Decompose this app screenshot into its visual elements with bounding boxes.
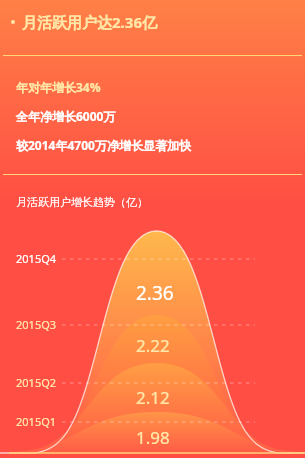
staticText: 2.12 [136,386,170,409]
staticText: 1.98 [136,426,170,449]
staticText: 2.36 [136,280,174,306]
staticText: 年对年增长34% [16,79,101,95]
staticText: 月活跃用户达2.36亿 [22,12,157,32]
staticText: 2015Q1 [16,414,57,429]
staticText: 2015Q3 [16,317,57,332]
staticText: 较2014年4700万净增长显著加快 [16,137,191,153]
staticText: 全年净增长6000万 [16,108,116,124]
button[interactable]: 月活跃用户达2.36亿 [0,0,305,44]
staticText: 2.22 [136,334,170,357]
staticText: 2015Q2 [16,375,57,390]
staticText: 2015Q4 [16,251,57,266]
staticText: 月活跃用户增长趋势（亿） [16,195,148,209]
